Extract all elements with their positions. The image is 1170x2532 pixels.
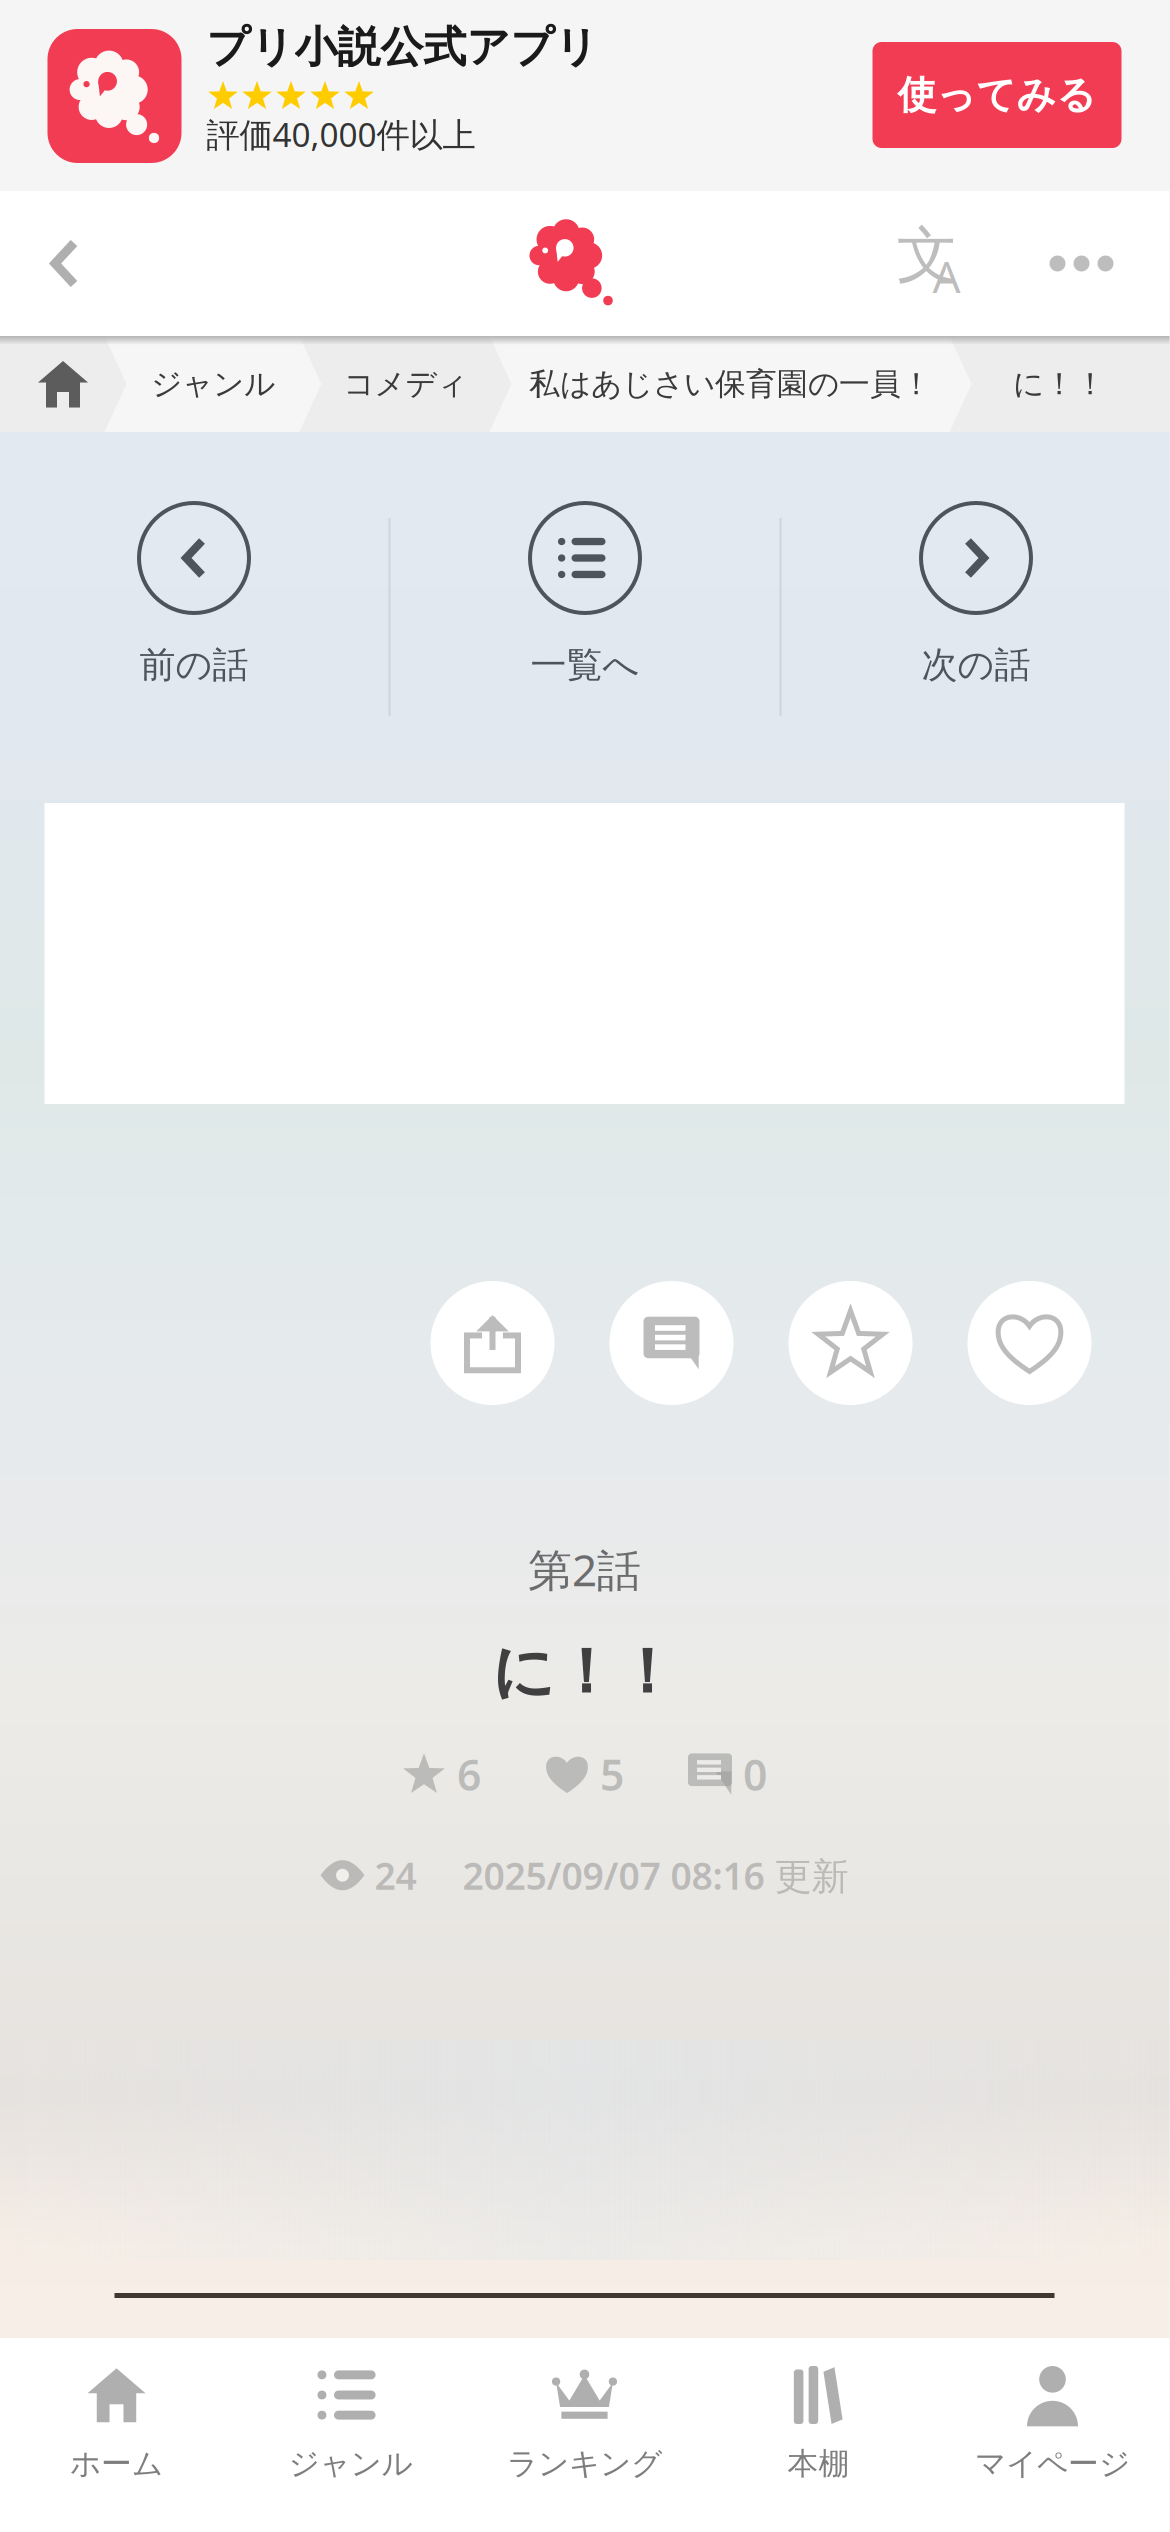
staticText: 一覧へ: [530, 643, 639, 687]
staticText: ジャンル: [288, 2445, 412, 2483]
staticText: プリ小説公式アプリ: [206, 21, 598, 73]
staticText: に！！: [492, 1634, 677, 1710]
staticText: 使ってみる: [897, 71, 1096, 119]
staticText: 本棚: [787, 2445, 849, 2483]
staticText: ホーム: [70, 2445, 163, 2483]
button[interactable]: 前の話: [0, 483, 388, 751]
staticText: 私はあじさい保育園の一員！: [529, 365, 932, 403]
button[interactable]: ホーム: [0, 2338, 233, 2532]
button[interactable]: ホーム: [0, 336, 126, 432]
button[interactable]: ジャンル: [104, 336, 321, 432]
button[interactable]: お気に入り: [788, 1281, 912, 1405]
button[interactable]: 翻訳: [874, 191, 1006, 336]
staticText: 文: [896, 218, 957, 293]
staticText: 5: [589, 1746, 624, 1802]
staticText: 前の話: [139, 643, 248, 687]
staticText: 24: [364, 1850, 416, 1900]
button[interactable]: マイページ: [935, 2338, 1169, 2532]
button[interactable]: その他: [1016, 191, 1146, 336]
staticText: コメディ: [343, 365, 467, 403]
button[interactable]: 一覧へ: [390, 483, 779, 751]
staticText: 第2話: [528, 1540, 641, 1598]
button[interactable]: コメディ: [299, 336, 511, 432]
staticText: マイページ: [975, 2445, 1130, 2483]
button[interactable]: いいね: [967, 1281, 1091, 1405]
staticText: 0: [732, 1746, 767, 1802]
button[interactable]: シェア: [430, 1281, 554, 1405]
staticText: 評価40,000件以上: [206, 112, 475, 156]
staticText: ランキング: [507, 2445, 662, 2483]
staticText: 6: [446, 1746, 481, 1802]
button[interactable]: 戻る: [0, 191, 129, 336]
staticText: ジャンル: [151, 365, 275, 403]
button[interactable]: 次の話: [781, 483, 1170, 751]
button[interactable]: 私はあじさい保育園の一員！: [489, 336, 971, 432]
staticText: A: [932, 247, 960, 305]
staticText: に！！: [1013, 365, 1106, 403]
button[interactable]: ランキング: [467, 2338, 701, 2532]
button[interactable]: 本棚: [701, 2338, 935, 2532]
staticText: 次の話: [921, 643, 1030, 687]
button[interactable]: ジャンル: [233, 2338, 467, 2532]
staticText: 2025/09/07 08:16 更新: [462, 1850, 848, 1900]
button[interactable]: コメント: [609, 1281, 733, 1405]
button[interactable]: 使ってみる: [872, 42, 1121, 148]
